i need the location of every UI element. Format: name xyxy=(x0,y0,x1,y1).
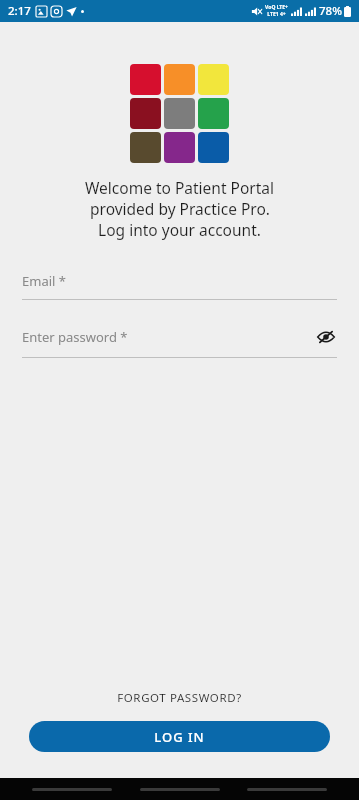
staticText: provided by Practice Pro. xyxy=(90,198,270,219)
staticText: Email * xyxy=(22,272,337,290)
staticText: FORGOT PASSWORD? xyxy=(117,690,242,706)
button[interactable]: LOG IN xyxy=(29,721,330,752)
staticText: Log into your account. xyxy=(98,219,261,240)
staticText: VoQ LTE+ xyxy=(265,4,288,11)
button[interactable]: FORGOT PASSWORD? xyxy=(0,686,359,710)
button[interactable]: Navigation xyxy=(247,788,327,791)
button[interactable]: Show password xyxy=(315,326,337,348)
staticText: 78% xyxy=(319,3,342,19)
staticText: Welcome to Patient Portal xyxy=(85,177,274,198)
button[interactable]: Navigation xyxy=(140,788,220,791)
staticText: 2:17 xyxy=(8,3,31,19)
button[interactable]: Navigation xyxy=(32,788,112,791)
button[interactable]: Enter password * xyxy=(22,326,337,358)
staticText: LOG IN xyxy=(154,728,205,746)
staticText: LTE1 4+ xyxy=(267,11,286,18)
button[interactable]: Email * xyxy=(22,272,337,300)
staticText: Enter password * xyxy=(22,328,315,346)
